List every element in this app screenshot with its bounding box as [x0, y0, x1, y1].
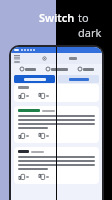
- button[interactable]: Dislike: [38, 92, 50, 100]
- button[interactable]: [14, 75, 55, 83]
- button[interactable]: Settings: [42, 56, 47, 61]
- button[interactable]: Like: [14, 106, 99, 143]
- button[interactable]: Dislike: [38, 173, 50, 181]
- staticText: Switch: [39, 10, 75, 25]
- button[interactable]: Like: [14, 147, 99, 184]
- button[interactable]: Like: [18, 173, 30, 181]
- button[interactable]: Like: [18, 132, 30, 140]
- button[interactable]: [58, 75, 99, 83]
- button[interactable]: Like: [18, 92, 30, 100]
- button[interactable]: Like: [14, 84, 99, 102]
- staticText: mode: [60, 41, 90, 56]
- button[interactable]: Library: [14, 55, 20, 63]
- button[interactable]: Dislike: [38, 132, 50, 140]
- staticText: to dark: [78, 10, 112, 40]
